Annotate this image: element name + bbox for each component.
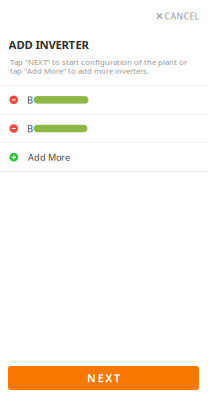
staticText: ADD INVERTER [9, 37, 89, 52]
staticText: Add More [28, 151, 70, 163]
staticText: B [27, 122, 33, 135]
button[interactable]: B [0, 114, 208, 142]
staticText: B [27, 93, 33, 106]
staticText: CANCEL [164, 10, 199, 22]
button[interactable]: Add More [0, 143, 208, 171]
button[interactable]: B [0, 86, 208, 114]
staticText: NEXT [87, 371, 120, 385]
button[interactable]: CANCEL [144, 0, 208, 28]
button[interactable]: NEXT [8, 366, 199, 390]
staticText: Tap "NEXT" to start configuration of the… [10, 58, 187, 75]
